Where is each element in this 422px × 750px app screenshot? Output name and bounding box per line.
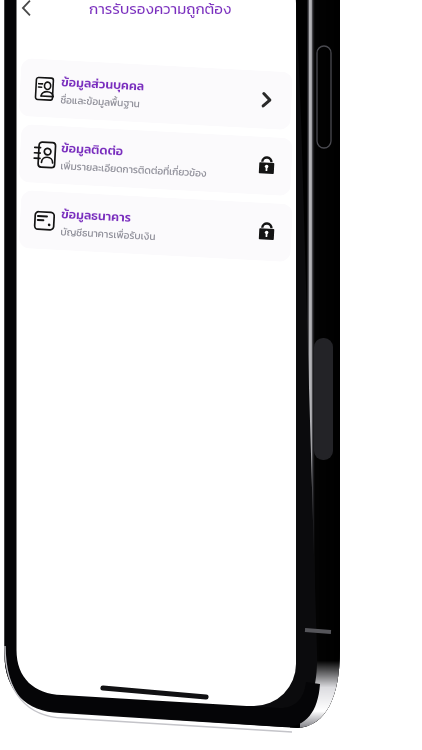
staticText: บัญชีธนาคารเพื่อรับเงิน — [60, 224, 157, 244]
button[interactable]: ข้อมูลส่วนบุคคล — [18, 58, 293, 130]
staticText: ชื่อและข้อมูลพื้นฐาน — [60, 92, 141, 111]
staticText: การรับรองความถูกต้อง — [89, 0, 232, 19]
button[interactable]: Back — [16, 0, 37, 19]
button[interactable]: ข้อมูลธนาคาร — [18, 190, 293, 262]
button[interactable]: ข้อมูลติดต่อ — [18, 124, 293, 196]
staticText: เพิ่มรายละเอียดการติดต่อที่เกี่ยวข้อง — [60, 158, 208, 181]
staticText: ข้อมูลติดต่อ — [61, 138, 124, 160]
staticText: ข้อมูลธนาคาร — [61, 204, 132, 227]
staticText: ข้อมูลส่วนบุคคล — [61, 72, 146, 96]
